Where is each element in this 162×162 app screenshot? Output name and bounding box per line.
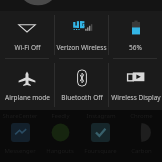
staticText: Wireless Display [111,93,161,102]
staticText: Carbon [131,147,152,155]
staticText: 56% [129,43,142,52]
staticText: Chrome [130,112,153,120]
button[interactable]: Bluetooth [55,59,108,110]
staticText: Hangouts [46,147,74,155]
staticText: Verizon Wireless [56,43,107,52]
staticText: Foursquare [84,147,117,155]
staticText: Bluetooth Off [61,93,103,102]
button[interactable]: Mobile data [55,11,108,58]
button[interactable]: Battery [109,11,162,58]
button[interactable]: Wi-Fi [0,11,54,58]
button[interactable]: Wireless Display [109,59,162,110]
staticText: Wi-Fi Off [14,43,41,52]
staticText: Airplane mode [5,93,50,102]
button[interactable]: Airplane mode [0,59,54,110]
staticText: ShareCenter [2,112,38,120]
staticText: Messenger [4,147,36,155]
staticText: Feedly [51,112,70,120]
staticText: Instagram [86,112,116,120]
